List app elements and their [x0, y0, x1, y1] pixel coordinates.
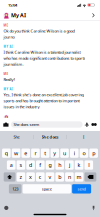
button[interactable]: s: [17, 160, 25, 170]
button[interactable]: f: [36, 160, 45, 170]
button[interactable]: d: [26, 160, 35, 170]
staticText: e: [24, 150, 27, 157]
button[interactable]: q: [2, 148, 11, 158]
button[interactable]: m: [75, 172, 83, 182]
button[interactable]: e: [21, 148, 30, 158]
staticText: 123: [12, 186, 18, 191]
button[interactable]: o: [80, 148, 88, 158]
staticText: x: [29, 173, 32, 180]
staticText: 15:04: [8, 2, 17, 8]
staticText: MY AI: [3, 87, 12, 91]
button[interactable]: Delete: [84, 172, 96, 182]
button[interactable]: n: [65, 172, 74, 182]
button[interactable]: w: [12, 148, 20, 158]
button[interactable]: My AI: [0, 11, 26, 20]
button[interactable]: u: [60, 148, 69, 158]
button[interactable]: k: [75, 160, 83, 170]
staticText: u: [63, 150, 66, 157]
staticText: f: [39, 161, 41, 169]
staticText: q: [5, 150, 8, 157]
staticText: l: [88, 161, 89, 169]
button[interactable]: Emoji keyboard: [0, 204, 13, 212]
staticText: y: [53, 150, 56, 157]
button[interactable]: Send a snap: [85, 122, 89, 127]
button[interactable]: x: [26, 172, 35, 182]
staticText: She: [13, 134, 19, 140]
staticText: ME: [3, 24, 7, 27]
staticText: I think Caroline Wilson is a talented jo…: [3, 50, 85, 67]
staticText: Ok do you think Caroline Wilson is a goo…: [3, 28, 74, 40]
staticText: o: [82, 150, 85, 157]
button[interactable]: Shift: [4, 172, 15, 182]
button[interactable]: z: [17, 172, 25, 182]
button[interactable]: b: [55, 172, 64, 182]
staticText: b: [58, 173, 61, 180]
staticText: My AI: [11, 12, 26, 19]
staticText: k: [78, 161, 81, 169]
staticText: s: [19, 161, 22, 169]
button[interactable]: space: [23, 184, 71, 193]
button[interactable]: r: [31, 148, 40, 158]
button[interactable]: Stickers: [91, 122, 97, 127]
staticText: I: [83, 134, 84, 140]
staticText: z: [19, 173, 22, 180]
staticText: a: [10, 161, 13, 169]
button[interactable]: a: [7, 160, 15, 170]
button[interactable]: 123: [9, 184, 21, 193]
button[interactable]: Camera: [3, 122, 9, 127]
button[interactable]: t: [41, 148, 49, 158]
staticText: space: [42, 186, 52, 191]
button[interactable]: I: [67, 132, 100, 141]
staticText: i: [74, 150, 75, 157]
button[interactable]: j: [65, 160, 74, 170]
staticText: She does: [41, 134, 58, 140]
button[interactable]: i: [70, 148, 79, 158]
staticText: Yes, I think she's done an excellent job…: [3, 92, 83, 109]
staticText: r: [34, 150, 36, 157]
staticText: She does seem: [13, 122, 39, 127]
staticText: v: [48, 173, 51, 180]
button[interactable]: c: [36, 172, 45, 182]
staticText: w: [14, 150, 18, 157]
button[interactable]: l: [84, 160, 93, 170]
button[interactable]: v: [46, 172, 54, 182]
button[interactable]: Dictation: [87, 204, 100, 212]
button[interactable]: h: [55, 160, 64, 170]
button[interactable]: p: [89, 148, 98, 158]
button[interactable]: send: [72, 184, 91, 193]
staticText: Really?: [3, 77, 15, 82]
staticText: ME: [3, 72, 7, 76]
button[interactable]: She does: [33, 132, 67, 141]
button[interactable]: g: [46, 160, 54, 170]
button[interactable]: Conversation details: [92, 11, 100, 19]
button[interactable]: y: [51, 148, 59, 158]
button[interactable]: She: [0, 132, 33, 141]
staticText: p: [92, 150, 95, 157]
staticText: MY AI: [3, 45, 12, 48]
staticText: send: [78, 186, 86, 191]
staticText: d: [29, 161, 32, 169]
staticText: g: [48, 161, 51, 169]
staticText: h: [58, 161, 61, 169]
staticText: c: [39, 173, 42, 180]
staticText: j: [69, 161, 70, 169]
staticText: m: [77, 173, 82, 180]
staticText: t: [44, 150, 46, 157]
staticText: n: [68, 173, 71, 180]
